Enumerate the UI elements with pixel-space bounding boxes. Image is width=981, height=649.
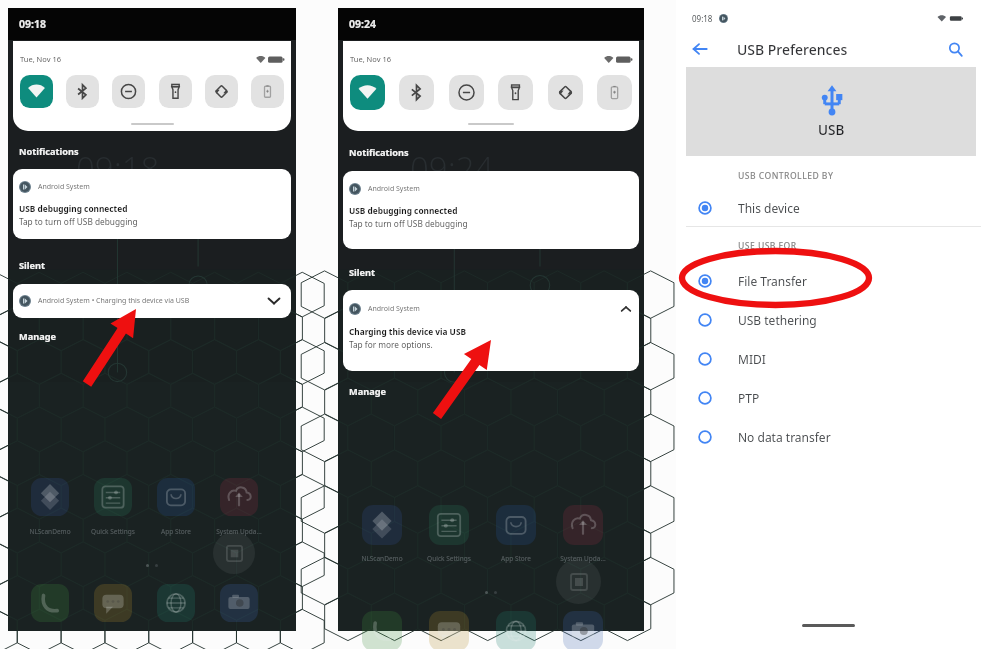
staticText: Notifications — [349, 146, 409, 159]
button[interactable]: Quick Settings — [429, 505, 469, 545]
button[interactable]: Android System • Charging this device vi… — [13, 284, 291, 318]
button[interactable]: Auto rotate — [205, 75, 238, 108]
staticText: NLScanDemo — [29, 527, 71, 536]
button[interactable]: Phone — [362, 611, 402, 649]
button[interactable]: Flashlight — [498, 75, 533, 110]
staticText: Tap for more options. — [349, 339, 433, 350]
button[interactable]: Flashlight — [159, 75, 192, 108]
button[interactable]: Phone — [31, 584, 69, 622]
staticText: Tue, Nov 16 — [350, 54, 392, 64]
staticText: 09:18 — [692, 13, 713, 24]
staticText: This device — [738, 200, 800, 216]
staticText: USB tethering — [738, 312, 817, 328]
button[interactable]: File Transfer — [676, 261, 981, 300]
staticText: 09:24 — [349, 17, 376, 31]
staticText: Android System • Charging this device vi… — [38, 296, 190, 306]
button[interactable]: Browser — [496, 611, 536, 649]
button[interactable]: System Update — [563, 505, 603, 545]
button[interactable]: Battery saver — [597, 75, 632, 110]
button[interactable]: Back — [687, 36, 713, 62]
button[interactable]: Bluetooth — [399, 75, 434, 110]
staticText: Tue, Nov 16 — [20, 54, 62, 64]
staticText: System Upda... — [560, 554, 606, 563]
staticText: Notifications — [19, 145, 79, 158]
button[interactable]: Do not disturb — [112, 75, 145, 108]
staticText: Tap to turn off USB debugging — [19, 216, 138, 227]
staticText: MIDI — [738, 351, 766, 367]
staticText: PTP — [738, 390, 760, 406]
button[interactable]: App Store — [157, 478, 195, 516]
staticText: USB debugging connected — [349, 205, 458, 216]
staticText: USB debugging connected — [19, 203, 128, 214]
button[interactable]: Bluetooth — [66, 75, 99, 108]
staticText: USB CONTROLLED BY — [738, 170, 834, 182]
button[interactable]: Battery saver — [251, 75, 284, 108]
button[interactable]: Wi-Fi — [20, 75, 53, 108]
staticText: Quick Settings — [427, 554, 471, 563]
staticText: App Store — [161, 527, 191, 536]
staticText: Quick Settings — [91, 527, 135, 536]
staticText: Silent — [19, 259, 45, 272]
button[interactable]: This device — [676, 193, 981, 223]
staticText: 09:24 — [410, 146, 494, 191]
staticText: App Store — [501, 554, 531, 563]
staticText: USB Preferences — [737, 40, 848, 59]
button[interactable]: Auto rotate — [548, 75, 583, 110]
staticText: Tap to turn off USB debugging — [349, 218, 468, 229]
button[interactable]: Quick Settings — [94, 478, 132, 516]
staticText: No data transfer — [738, 429, 831, 445]
staticText: NLScanDemo — [361, 554, 403, 563]
staticText: Android System — [368, 304, 420, 314]
button[interactable]: No data transfer — [676, 417, 981, 456]
button[interactable]: Camera — [220, 584, 258, 622]
staticText: 09:18 — [76, 146, 160, 191]
button[interactable]: Search — [943, 37, 967, 61]
staticText: 09:18 — [19, 17, 46, 31]
button[interactable]: Android System — [343, 171, 639, 249]
button[interactable]: PTP — [676, 378, 981, 417]
button[interactable]: Messages — [94, 584, 132, 622]
staticText: Android System — [38, 182, 90, 192]
staticText: Silent — [349, 266, 375, 279]
button[interactable]: Wi-Fi — [350, 75, 385, 110]
button[interactable]: Messages — [429, 611, 469, 649]
button[interactable]: App Store — [496, 505, 536, 545]
staticText: File Transfer — [738, 273, 807, 289]
staticText: Manage — [349, 385, 386, 398]
button[interactable]: Android System — [13, 169, 291, 239]
button[interactable]: Android System — [343, 290, 639, 371]
staticText: Charging this device via USB — [349, 326, 466, 337]
staticText: Android System — [368, 184, 420, 194]
staticText: System Upda... — [216, 527, 262, 536]
button[interactable]: MIDI — [676, 339, 981, 378]
staticText: USB — [818, 121, 845, 139]
button[interactable]: Camera — [563, 611, 603, 649]
button[interactable]: NLScanDemo — [362, 505, 402, 545]
button[interactable]: Browser — [157, 584, 195, 622]
staticText: Manage — [19, 330, 56, 343]
staticText: USE USB FOR — [738, 240, 797, 252]
button[interactable]: Do not disturb — [449, 75, 484, 110]
button[interactable]: NLScanDemo — [31, 478, 69, 516]
button[interactable]: System Update — [220, 478, 258, 516]
button[interactable]: USB tethering — [676, 300, 981, 339]
